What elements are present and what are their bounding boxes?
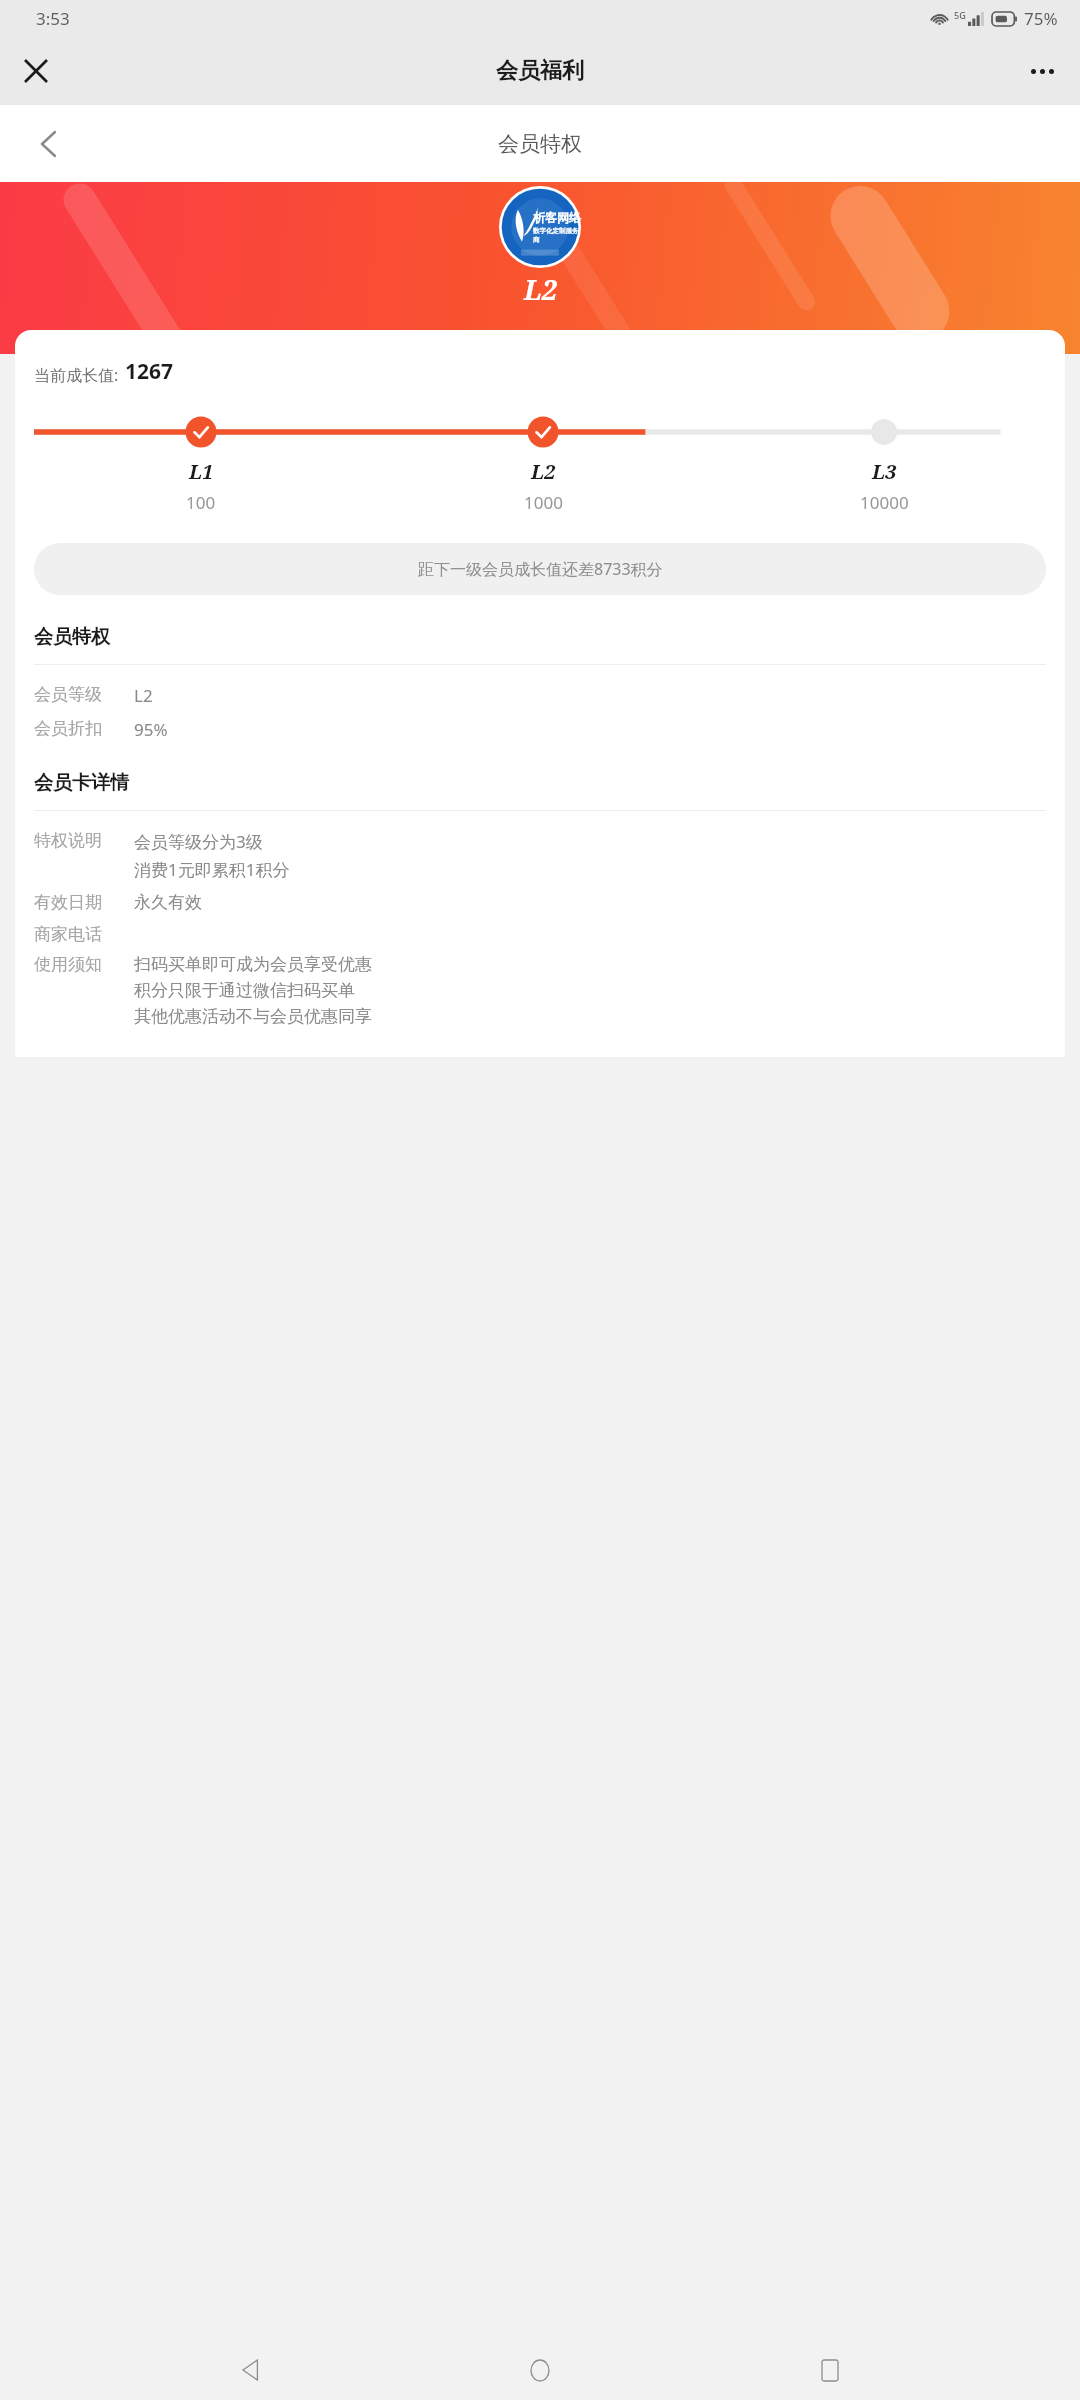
- staticText: 会员特权: [498, 131, 582, 157]
- button[interactable]: Back: [22, 118, 74, 170]
- staticText: 会员等级: [34, 684, 122, 705]
- button[interactable]: Recent apps: [791, 2340, 869, 2400]
- staticText: 会员卡详情: [34, 771, 129, 795]
- button[interactable]: Home: [501, 2340, 579, 2400]
- staticText: 会员特权: [34, 625, 110, 649]
- staticText: 会员等级分为3级: [134, 830, 263, 853]
- button[interactable]: Back: [212, 2340, 290, 2400]
- staticText: 5G: [954, 9, 966, 21]
- staticText: 1267: [125, 357, 174, 386]
- staticText: 析客网络: [533, 210, 581, 225]
- staticText: 当前成长值:: [34, 364, 119, 386]
- staticText: 数字化定制服务商: [533, 227, 581, 243]
- staticText: 商家电话: [34, 924, 122, 945]
- staticText: L3: [872, 458, 897, 485]
- staticText: 1000: [524, 491, 563, 514]
- staticText: 距下一级会员成长值还差8733积分: [418, 558, 663, 580]
- button[interactable]: 距下一级会员成长值还差8733积分: [34, 543, 1046, 595]
- staticText: L2: [531, 458, 556, 485]
- staticText: 会员福利: [496, 57, 584, 85]
- button[interactable]: More options: [1014, 43, 1070, 99]
- staticText: 有效日期: [34, 892, 122, 913]
- staticText: 永久有效: [134, 892, 202, 913]
- staticText: 10000: [860, 491, 909, 514]
- staticText: L2: [134, 684, 153, 707]
- staticText: L1: [189, 458, 214, 485]
- staticText: 积分只限于通过微信扫码买单: [134, 980, 355, 1001]
- staticText: 95%: [134, 718, 168, 741]
- staticText: 3:53: [36, 7, 70, 30]
- staticText: 消费1元即累积1积分: [134, 858, 290, 881]
- button[interactable]: Close: [8, 43, 64, 99]
- staticText: 75%: [1024, 7, 1058, 30]
- staticText: 其他优惠活动不与会员优惠同享: [134, 1006, 372, 1027]
- staticText: 扫码买单即可成为会员享受优惠: [134, 954, 372, 975]
- staticText: 特权说明: [34, 830, 122, 851]
- staticText: 会员折扣: [34, 718, 122, 739]
- staticText: 使用须知: [34, 954, 122, 975]
- staticText: L2: [524, 271, 557, 308]
- staticText: 100: [186, 491, 216, 514]
